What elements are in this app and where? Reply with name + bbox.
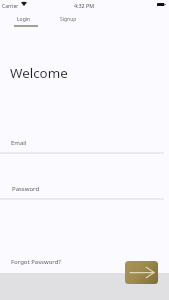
staticText: Signup bbox=[60, 16, 77, 23]
staticText: 4:32 PM bbox=[74, 2, 95, 9]
staticText: Password bbox=[12, 185, 40, 193]
button[interactable]: Continue bbox=[125, 261, 158, 284]
staticText: Carrier bbox=[2, 3, 19, 10]
staticText: Login bbox=[17, 16, 31, 23]
button[interactable]: Signup bbox=[60, 16, 77, 23]
staticText: Forgot Password? bbox=[11, 258, 61, 266]
staticText: Welcome bbox=[10, 64, 68, 82]
button[interactable]: Login bbox=[12, 16, 36, 27]
staticText: Email bbox=[11, 139, 27, 147]
button[interactable]: Forgot Password? bbox=[11, 258, 61, 266]
